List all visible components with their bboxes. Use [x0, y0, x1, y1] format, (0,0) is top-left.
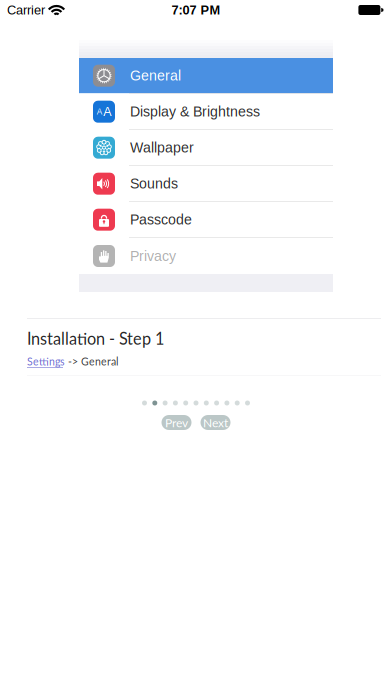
staticText: Next	[203, 415, 228, 430]
button[interactable]: Wallpaper	[79, 130, 333, 166]
button[interactable]: Privacy	[79, 238, 333, 274]
staticText: Installation - Step 1	[27, 329, 164, 348]
button[interactable]: Prev	[161, 415, 191, 430]
staticText: Passcode	[130, 212, 192, 228]
button[interactable]: Sounds	[79, 166, 333, 202]
staticText: A	[97, 107, 103, 116]
button[interactable]: Settings	[27, 355, 65, 368]
button[interactable]: Passcode	[79, 202, 333, 238]
button[interactable]: Next	[200, 415, 230, 430]
staticText: Carrier	[7, 3, 45, 17]
staticText: Settings	[27, 355, 65, 368]
staticText: Sounds	[130, 176, 178, 192]
staticText: Privacy	[130, 248, 176, 264]
staticText: A	[103, 105, 111, 119]
staticText: General	[130, 68, 181, 84]
button[interactable]: A	[79, 94, 333, 130]
button[interactable]: General	[79, 58, 333, 94]
staticText: Wallpaper	[130, 140, 194, 156]
staticText: 7:07 PM	[171, 3, 220, 17]
staticText: -> General	[65, 355, 118, 368]
staticText: Display & Brightness	[130, 104, 260, 120]
staticText: Prev	[165, 415, 188, 430]
